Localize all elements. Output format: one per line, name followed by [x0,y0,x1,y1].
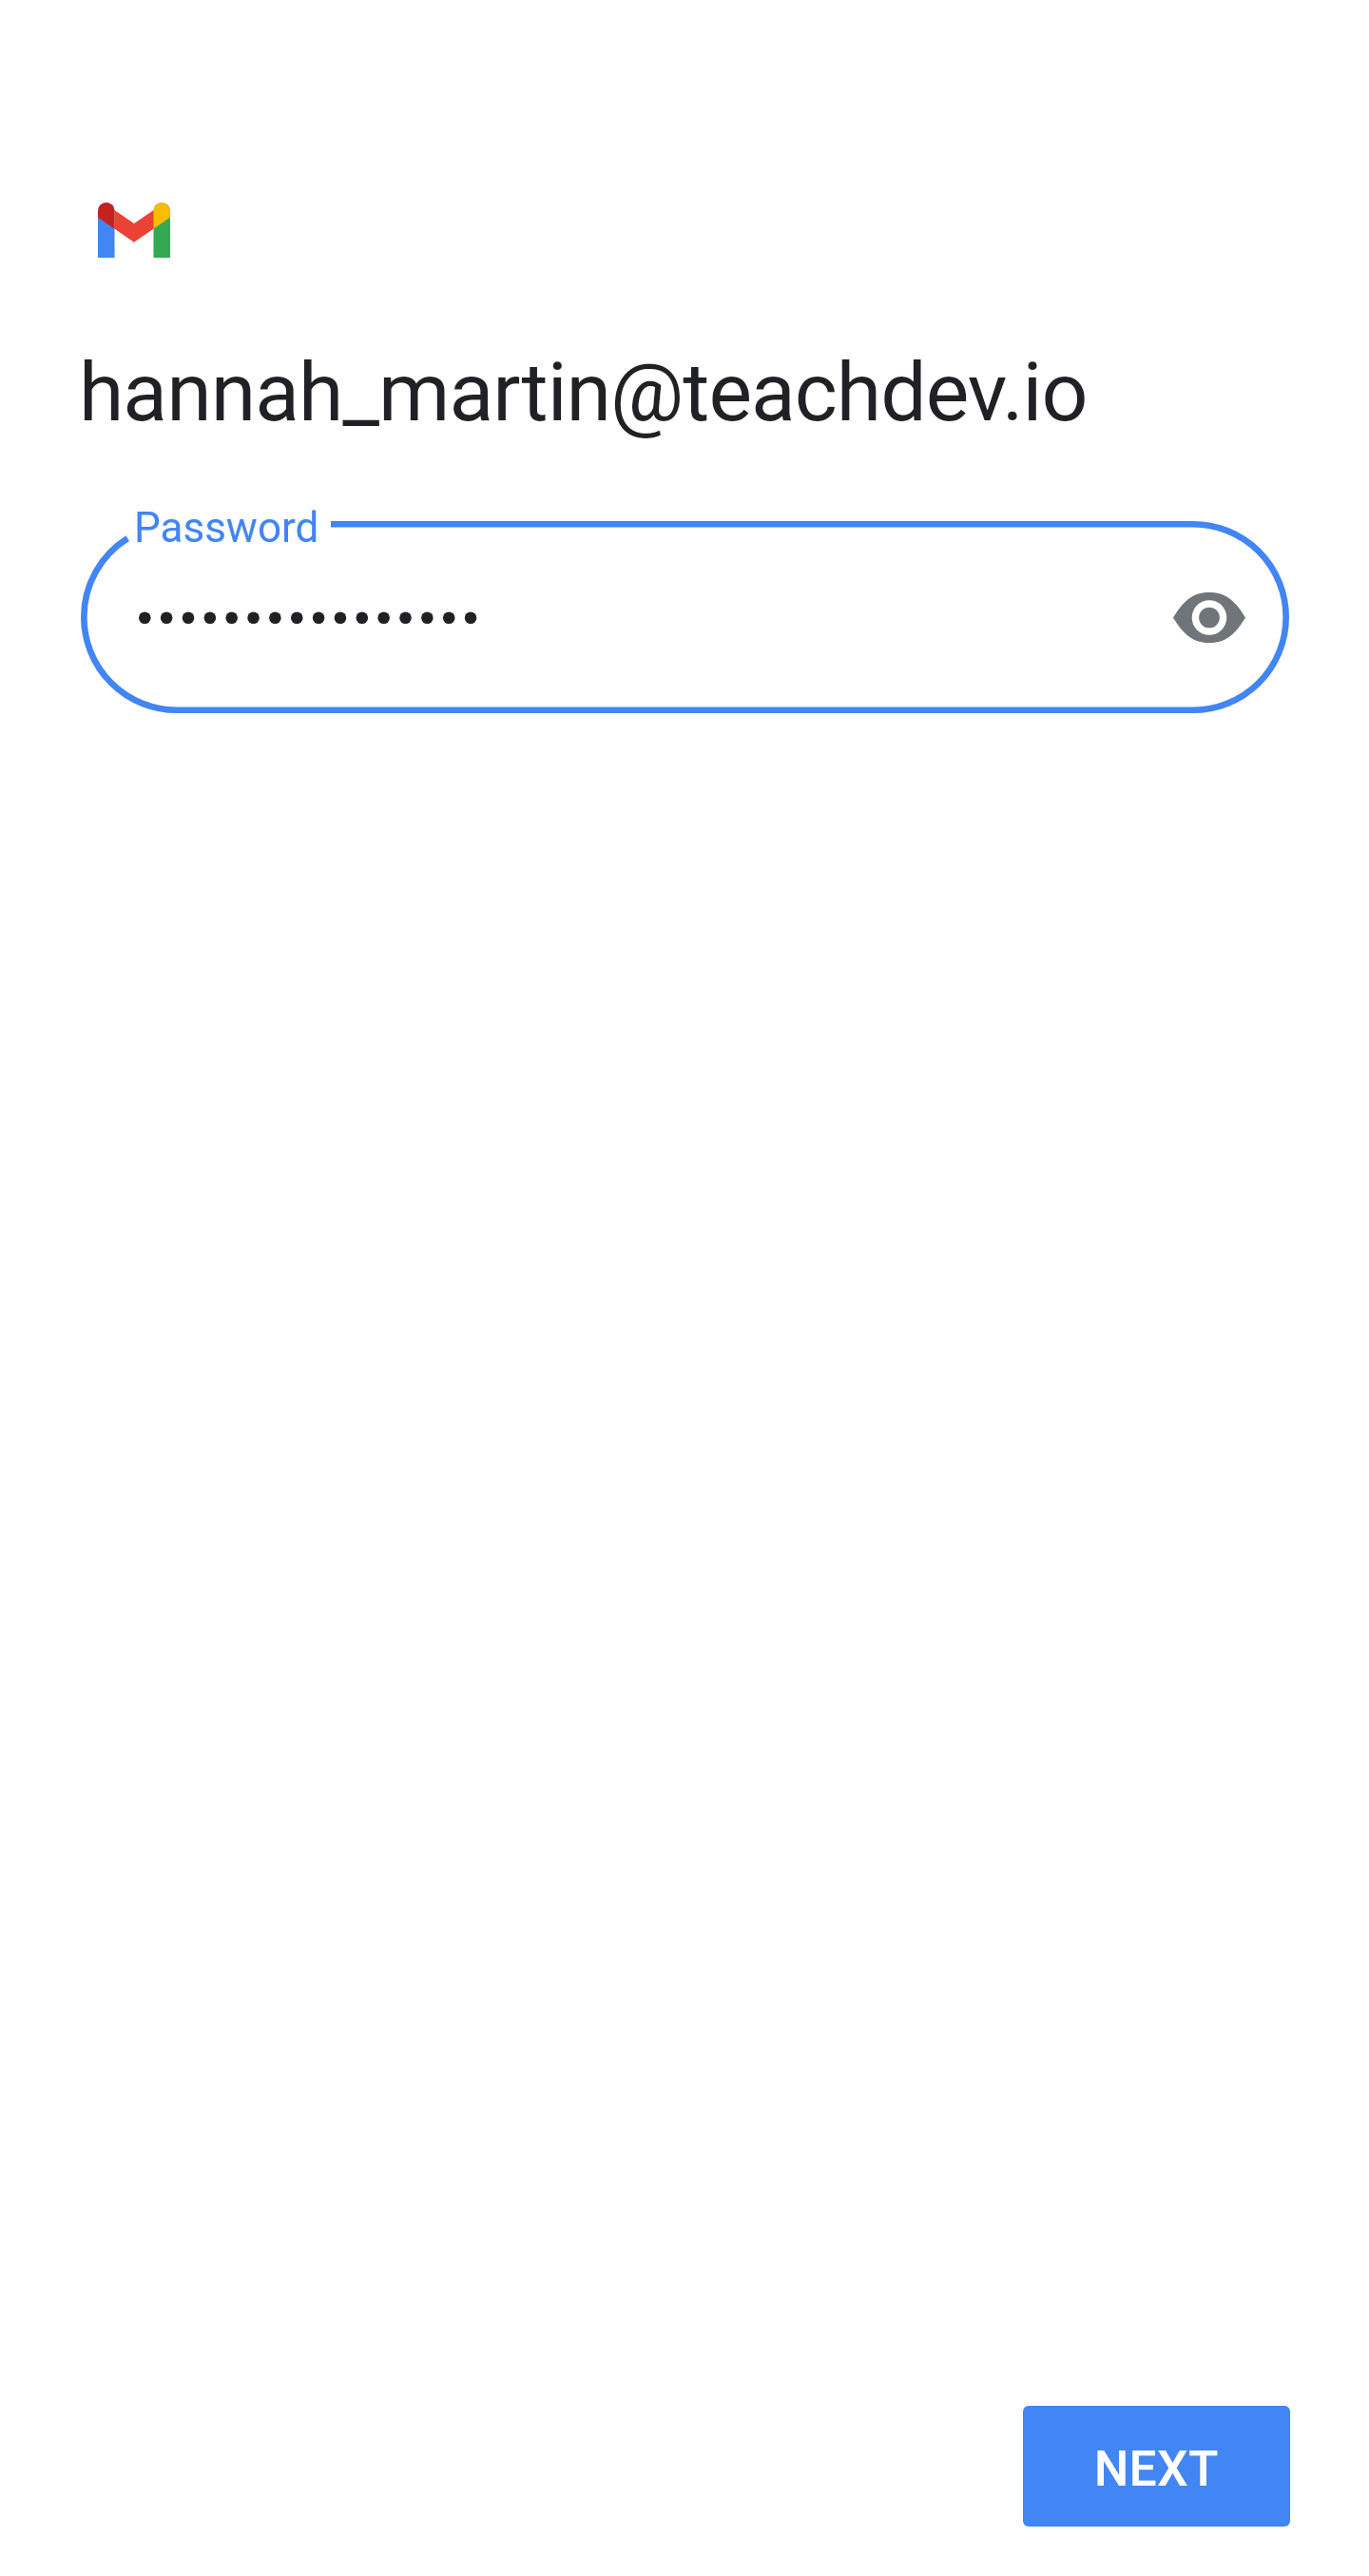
button[interactable]: Password [81,521,1289,713]
staticText: hannah_martin@teachdev.io [79,344,1088,440]
button[interactable]: NEXT [1023,2406,1290,2527]
staticText: Password [134,503,319,552]
staticText: NEXT [1094,2441,1219,2498]
button[interactable]: Show password [1159,567,1260,668]
